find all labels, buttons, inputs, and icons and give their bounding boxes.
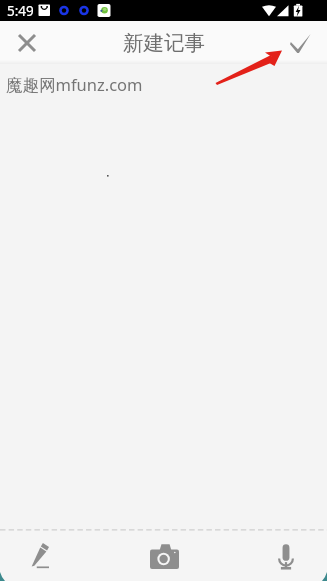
button[interactable]: Close [5,21,49,64]
staticText: 5:49 [7,2,34,20]
button[interactable]: Camera [141,533,187,579]
button[interactable]: Voice [264,534,308,578]
staticText: 魔趣网mfunz.com [6,73,143,96]
button[interactable]: Draw [18,534,62,578]
staticText: 新建记事 [123,30,205,56]
button[interactable]: Save [280,23,320,63]
